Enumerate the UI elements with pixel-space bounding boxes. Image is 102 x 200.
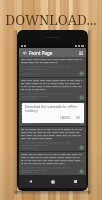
button[interactable]: Recent apps: [64, 175, 86, 188]
button[interactable]: CANCEL: [59, 115, 72, 121]
button[interactable]: Home: [42, 175, 64, 188]
button[interactable]: Back: [19, 175, 42, 188]
button[interactable]: [19, 152, 86, 175]
staticText: DOWNLOAD...: [5, 11, 97, 29]
button[interactable]: [19, 57, 86, 77]
button[interactable]: OK: [75, 115, 81, 121]
button[interactable]: More options: [77, 49, 84, 56]
button[interactable]: [19, 102, 86, 126]
staticText: CANCEL: [60, 116, 71, 120]
button[interactable]: [19, 78, 86, 101]
button[interactable]: Back: [21, 49, 28, 56]
button[interactable]: [19, 127, 86, 151]
staticText: OK: [76, 116, 80, 120]
staticText: Download this subreddit for offline read…: [25, 105, 78, 113]
staticText: Front Page: [29, 50, 53, 56]
